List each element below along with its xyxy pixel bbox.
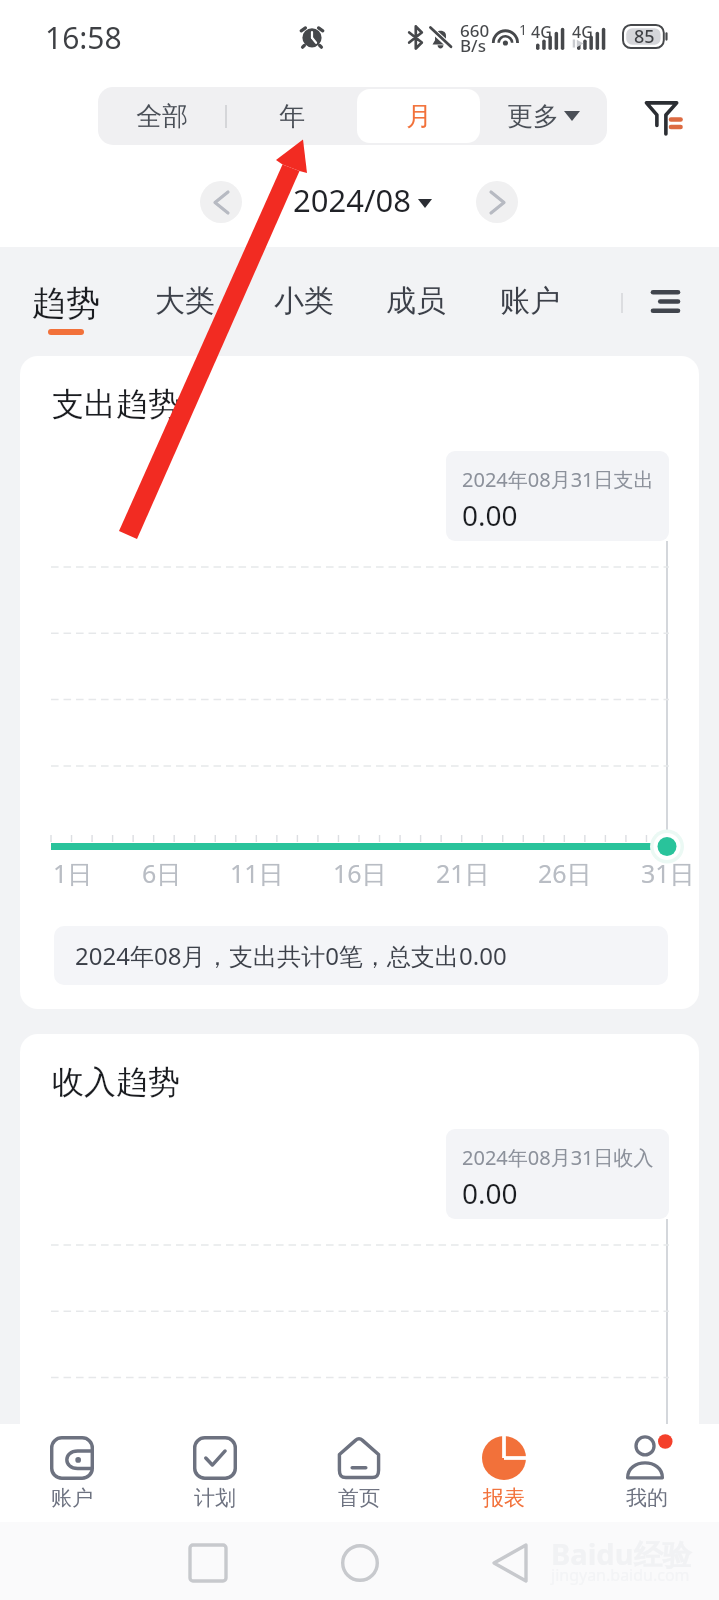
button[interactable]: 成员 — [360, 247, 472, 337]
staticText: 2024/08 — [293, 179, 411, 221]
staticText: 我的 — [626, 1485, 668, 1511]
button[interactable]: 月 — [357, 89, 480, 143]
staticText: 31日 — [641, 856, 695, 890]
staticText: 首页 — [338, 1485, 380, 1511]
staticText: 账户 — [500, 282, 560, 320]
button[interactable]: Next month — [476, 181, 518, 223]
staticText: 0.00 — [462, 1174, 518, 1212]
staticText: 更多 — [507, 100, 559, 133]
button[interactable]: 年 — [226, 87, 357, 145]
staticText: 报表 — [483, 1485, 525, 1511]
button[interactable]: Home — [334, 1537, 385, 1588]
staticText: 计划 — [194, 1485, 236, 1511]
staticText: 账户 — [51, 1485, 93, 1511]
staticText: 21日 — [436, 856, 490, 890]
staticText: 11日 — [230, 856, 284, 890]
staticText: 660 — [460, 19, 490, 42]
staticText: 16日 — [333, 856, 387, 890]
button[interactable]: 全部 — [98, 87, 226, 145]
button[interactable]: Recents — [182, 1537, 233, 1588]
button[interactable]: 小类 — [248, 247, 360, 337]
button[interactable]: 我的 — [577, 1424, 717, 1522]
button[interactable]: 报表 — [434, 1424, 574, 1522]
staticText: 2024年08月31日支出 — [462, 466, 654, 493]
staticText: 4G — [531, 21, 552, 43]
button[interactable]: More tabs — [640, 276, 690, 326]
staticText: 6日 — [142, 856, 182, 890]
staticText: 收入趋势 — [52, 1062, 180, 1102]
staticText: 16:58 — [45, 17, 122, 58]
button[interactable]: 大类 — [129, 247, 241, 337]
staticText: Baidu经验 — [551, 1534, 692, 1574]
staticText: 2024年08月，支出共计0笔，总支出0.00 — [75, 939, 507, 972]
staticText: 趋势 — [32, 282, 100, 325]
staticText: 1日 — [53, 856, 93, 890]
staticText: 大类 — [155, 282, 215, 320]
button[interactable]: 更多 — [480, 87, 607, 145]
staticText: 1 — [519, 20, 528, 39]
staticText: 0.00 — [462, 496, 518, 534]
staticText: 月 — [406, 100, 432, 133]
button[interactable]: 计划 — [145, 1424, 285, 1522]
button[interactable]: 账户 — [474, 247, 586, 337]
staticText: 85 — [634, 24, 655, 47]
button[interactable]: 2024/08 — [293, 178, 432, 222]
button[interactable]: 趋势 — [10, 247, 122, 337]
staticText: B/s — [460, 34, 486, 57]
button[interactable]: Filter — [636, 90, 692, 146]
staticText: 小类 — [274, 282, 334, 320]
staticText: 全部 — [136, 100, 188, 133]
staticText: 2024年08月31日收入 — [462, 1144, 654, 1171]
staticText: 成员 — [386, 282, 446, 320]
staticText: 26日 — [538, 856, 592, 890]
staticText: 年 — [279, 100, 305, 133]
button[interactable]: Back — [484, 1537, 535, 1588]
staticText: 支出趋势 — [52, 384, 180, 424]
button[interactable]: 账户 — [2, 1424, 142, 1522]
button[interactable]: Previous month — [200, 181, 242, 223]
button[interactable]: 首页 — [289, 1424, 429, 1522]
staticText: 4G — [572, 21, 593, 43]
